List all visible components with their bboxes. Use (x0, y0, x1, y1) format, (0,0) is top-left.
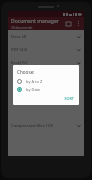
staticText: Document manager (11, 18, 59, 25)
staticText: 18 documents (11, 26, 33, 30)
staticText: PDF (23) (11, 47, 77, 53)
staticText: by Date (26, 87, 41, 92)
button[interactable]: by A to Z (17, 79, 76, 84)
staticText: Compressed files (10) (11, 123, 77, 129)
button[interactable]: Excel (5) (8, 56, 84, 69)
button[interactable]: Docs (4) (8, 30, 84, 43)
button[interactable]: More options (75, 20, 82, 27)
button[interactable]: Compressed files (10) (8, 119, 84, 132)
button[interactable]: Switch view (65, 20, 72, 27)
button[interactable]: SORT (62, 95, 76, 102)
staticText: by A to Z (26, 79, 43, 84)
staticText: Excel (5) (11, 60, 77, 66)
staticText: Docs (4) (11, 34, 77, 40)
staticText: Choose: (17, 69, 35, 75)
staticText: SORT (64, 96, 74, 101)
button[interactable]: PDF (23) (8, 43, 84, 56)
button[interactable]: by Date (17, 87, 76, 92)
